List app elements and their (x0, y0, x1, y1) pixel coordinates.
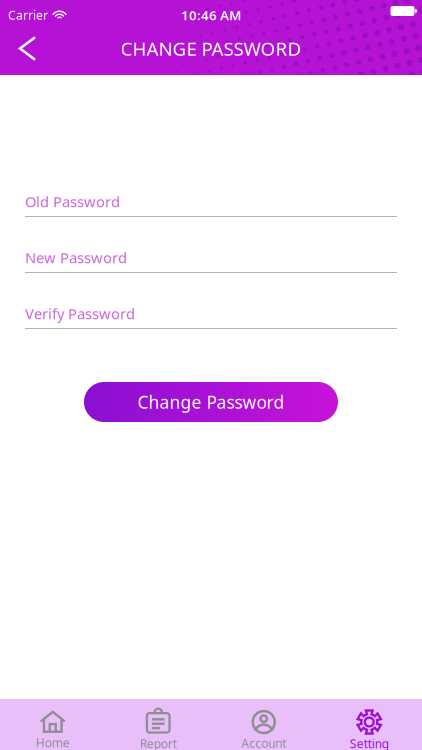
staticText: Home (36, 734, 70, 750)
staticText: Carrier (8, 7, 48, 23)
button[interactable]: Home (0, 710, 105, 750)
button[interactable]: Change Password (84, 382, 338, 422)
staticText: Old Password (25, 192, 120, 211)
button[interactable]: Report (105, 709, 211, 750)
staticText: New Password (25, 248, 127, 267)
staticText: Account (241, 735, 286, 750)
staticText: 10:46 AM (181, 6, 241, 24)
staticText: Verify Password (25, 304, 135, 323)
staticText: Setting (350, 735, 389, 750)
button[interactable]: Setting (316, 709, 422, 750)
staticText: CHANGE PASSWORD (120, 36, 301, 61)
staticText: Change Password (137, 390, 284, 413)
button[interactable]: Back (0, 26, 49, 71)
staticText: Report (140, 735, 177, 750)
button[interactable]: Account (211, 710, 316, 750)
